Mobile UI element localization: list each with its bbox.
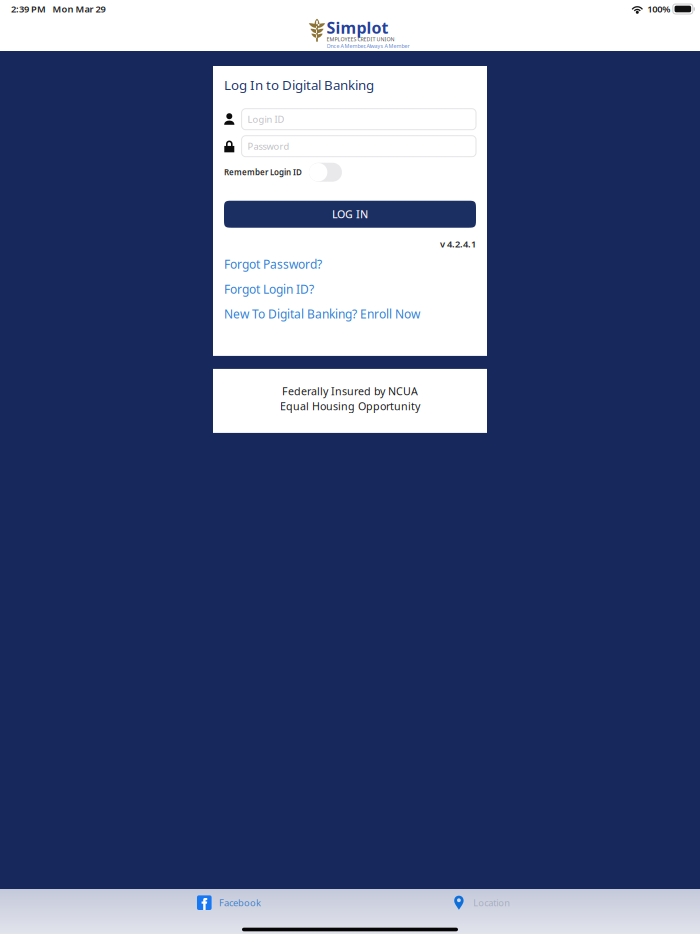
staticText: Once A Member, Always A Member [326,42,409,49]
button[interactable]: Location [454,886,574,920]
staticText: 100% [647,3,670,15]
staticText: Equal Housing Opportunity [280,399,420,413]
staticText: Simplot [326,17,388,38]
staticText: Forgot Login ID? [224,281,314,297]
staticText: Password [248,140,290,152]
staticText: Log In to Digital Banking [224,76,374,94]
button[interactable]: LOG IN [224,201,476,228]
staticText: Forgot Password? [224,256,322,272]
staticText: Login ID [248,113,285,125]
staticText: EMPLOYEES CREDIT UNION [326,36,394,43]
button[interactable]: Remember Login ID [309,163,342,182]
button[interactable]: Facebook [197,886,317,920]
button[interactable]: New To Digital Banking? Enroll Now [224,306,476,322]
staticText: Location [473,896,510,909]
staticText: 2:39 PM [11,3,46,15]
button[interactable]: Forgot Login ID? [224,281,476,297]
staticText: Mon Mar 29 [52,3,105,15]
staticText: v 4.2.4.1 [440,238,476,250]
staticText: Facebook [219,896,261,909]
staticText: New To Digital Banking? Enroll Now [224,306,420,322]
button[interactable]: Forgot Password? [224,256,476,272]
staticText: LOG IN [332,207,368,221]
staticText: Federally Insured by NCUA [282,384,418,398]
staticText: Remember Login ID [224,167,302,177]
